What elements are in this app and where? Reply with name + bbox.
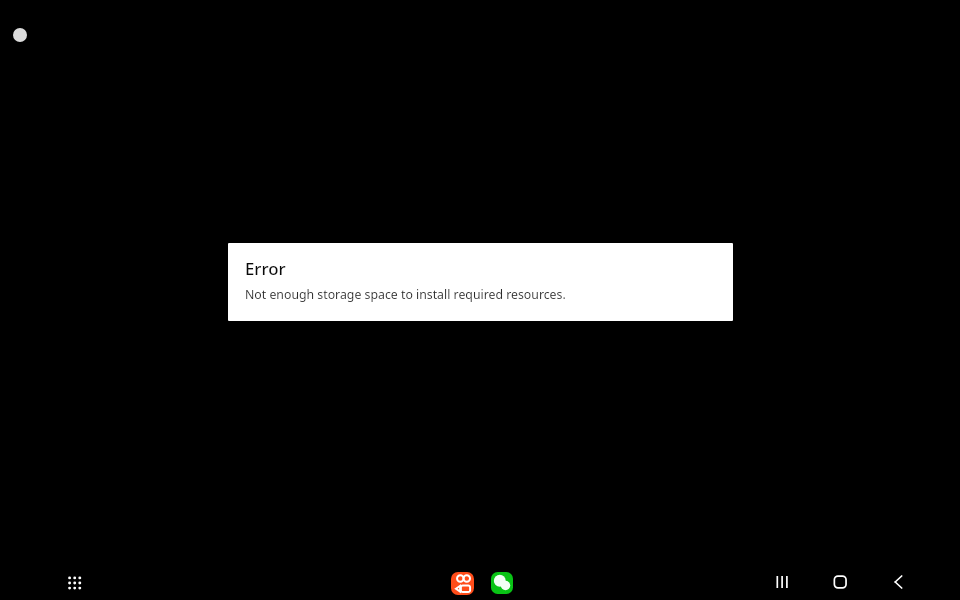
button[interactable]: Back (883, 567, 913, 597)
staticText: Error (245, 257, 286, 280)
button[interactable]: Error (228, 243, 733, 321)
button[interactable]: Recent apps (767, 567, 797, 597)
button[interactable]: Apps (60, 568, 90, 598)
button[interactable]: Home (825, 567, 855, 597)
button[interactable]: Kuaishou (451, 572, 474, 595)
staticText: Not enough storage space to install requ… (245, 286, 566, 303)
button[interactable]: WeChat (491, 572, 513, 594)
